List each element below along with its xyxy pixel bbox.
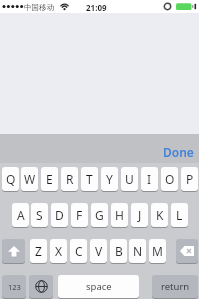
staticText: space xyxy=(86,280,112,293)
button[interactable]: A xyxy=(12,203,29,227)
button[interactable] xyxy=(176,239,198,263)
staticText: H xyxy=(115,207,124,223)
staticText: T xyxy=(86,171,93,187)
staticText: 中国移动 xyxy=(24,3,54,12)
button[interactable]: B xyxy=(110,239,127,263)
staticText: C xyxy=(75,243,83,259)
staticText: N xyxy=(133,243,143,259)
staticText: G xyxy=(95,207,104,223)
button[interactable] xyxy=(2,239,25,263)
staticText: X xyxy=(55,243,63,259)
button[interactable]: T xyxy=(81,167,98,191)
button[interactable]: return xyxy=(152,275,198,298)
button[interactable]: W xyxy=(21,167,38,191)
button[interactable]: E xyxy=(41,167,58,191)
staticText: K xyxy=(156,207,164,223)
button[interactable]: G xyxy=(91,203,108,227)
button[interactable]: F xyxy=(71,203,88,227)
staticText: B xyxy=(115,243,123,259)
button[interactable]: Z xyxy=(30,239,47,263)
staticText: R xyxy=(66,171,74,187)
staticText: E xyxy=(46,171,53,187)
button[interactable]: Y xyxy=(101,167,118,191)
staticText: L xyxy=(176,207,183,223)
staticText: P xyxy=(186,171,194,187)
staticText: U xyxy=(125,171,134,187)
button[interactable]: D xyxy=(51,203,68,227)
button[interactable]: 123 xyxy=(2,275,26,298)
staticText: return xyxy=(161,280,190,293)
staticText: V xyxy=(95,243,103,259)
button[interactable]: O xyxy=(161,167,178,191)
staticText: I xyxy=(147,171,152,187)
staticText: J xyxy=(138,207,142,223)
button[interactable]: Done xyxy=(160,141,196,163)
staticText: D xyxy=(55,207,64,223)
button[interactable]: N xyxy=(129,239,146,263)
staticText: Z xyxy=(35,243,42,259)
button[interactable]: X xyxy=(50,239,67,263)
button[interactable]: K xyxy=(151,203,168,227)
staticText: Done xyxy=(163,144,194,160)
button[interactable]: M xyxy=(149,239,166,263)
staticText: 21:09 xyxy=(86,2,107,13)
button[interactable]: C xyxy=(70,239,87,263)
button[interactable]: space xyxy=(58,275,139,298)
button[interactable]: I xyxy=(141,167,158,191)
staticText: F xyxy=(76,207,83,223)
button[interactable]: R xyxy=(61,167,78,191)
button[interactable]: H xyxy=(111,203,128,227)
staticText: S xyxy=(36,207,43,223)
staticText: Y xyxy=(106,171,113,187)
staticText: 123 xyxy=(8,282,21,292)
button[interactable]: L xyxy=(171,203,188,227)
staticText: W xyxy=(24,171,36,187)
button[interactable]: S xyxy=(31,203,48,227)
button[interactable]: U xyxy=(121,167,138,191)
button[interactable]: V xyxy=(90,239,107,263)
staticText: M xyxy=(152,243,163,259)
staticText: Q xyxy=(6,171,16,187)
button[interactable]: J xyxy=(131,203,148,227)
button[interactable] xyxy=(29,275,53,298)
staticText: O xyxy=(165,171,175,187)
button[interactable]: P xyxy=(181,167,198,191)
button[interactable]: Q xyxy=(2,167,19,191)
staticText: A xyxy=(17,207,25,223)
